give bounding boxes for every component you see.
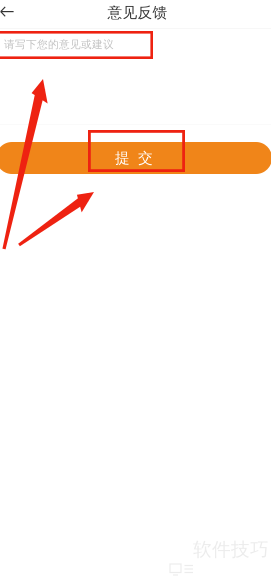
staticText: 软件技巧: [193, 538, 269, 561]
button[interactable]: 提 交: [0, 142, 271, 174]
staticText: 请写下您的意见或建议: [4, 38, 114, 51]
staticText: 提 交: [115, 149, 153, 167]
staticText: 意见反馈: [107, 3, 167, 21]
button[interactable]: Back: [0, 0, 28, 27]
